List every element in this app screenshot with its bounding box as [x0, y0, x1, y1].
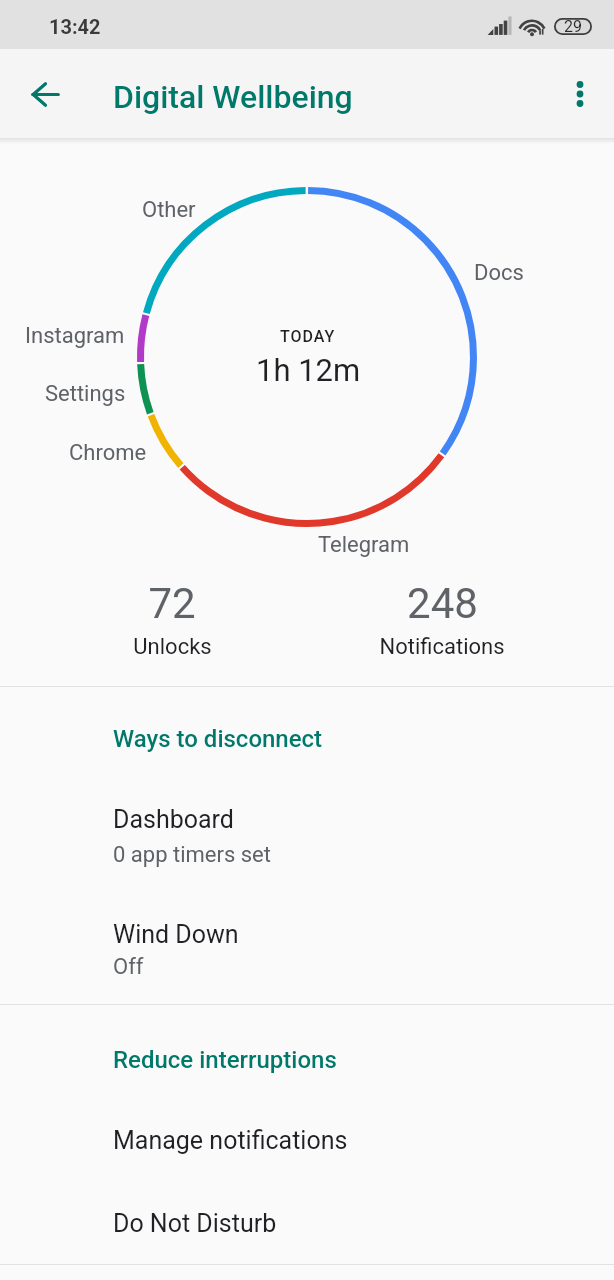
staticText: Do Not Disturb: [113, 1209, 277, 1238]
staticText: Telegram: [318, 532, 410, 558]
button[interactable]: Reduce interruptions: [0, 1032, 614, 1088]
button[interactable]: Dashboard: [0, 791, 614, 901]
staticText: Docs: [474, 260, 524, 286]
staticText: Ways to disconnect: [113, 725, 323, 753]
staticText: Settings: [45, 381, 126, 407]
button[interactable]: Wind Down: [0, 906, 614, 1004]
button[interactable]: 72: [37, 579, 307, 685]
staticText: Manage notifications: [113, 1126, 348, 1155]
staticText: Reduce interruptions: [113, 1046, 337, 1074]
staticText: Chrome: [69, 440, 147, 466]
staticText: Instagram: [25, 323, 125, 349]
staticText: Dashboard: [113, 805, 234, 834]
staticText: Notifications: [379, 634, 505, 660]
staticText: Other: [142, 197, 196, 223]
button[interactable]: Do Not Disturb: [0, 1195, 614, 1278]
staticText: Unlocks: [133, 634, 212, 660]
staticText: 72: [148, 579, 196, 628]
button[interactable]: Back: [19, 68, 71, 120]
button[interactable]: Ways to disconnect: [0, 711, 614, 767]
staticText: Off: [113, 954, 144, 980]
button[interactable]: Manage notifications: [0, 1112, 614, 1195]
button[interactable]: More options: [553, 67, 606, 120]
staticText: 13:42: [49, 15, 101, 38]
staticText: 0 app timers set: [113, 842, 271, 868]
staticText: Digital Wellbeing: [113, 78, 353, 116]
staticText: 29: [564, 17, 582, 34]
button[interactable]: 248: [307, 579, 577, 685]
staticText: TODAY: [280, 327, 336, 346]
staticText: Wind Down: [113, 920, 239, 949]
staticText: 1h 12m: [256, 352, 361, 388]
staticText: 248: [407, 579, 478, 628]
